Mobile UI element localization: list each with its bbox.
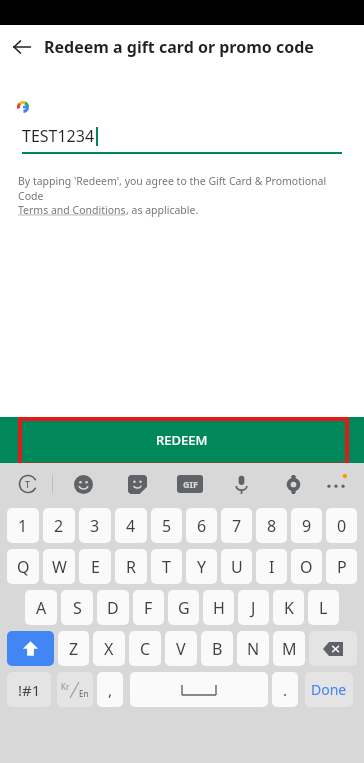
button[interactable]: N [237,631,269,666]
button[interactable]: 7 [221,508,252,543]
button[interactable]: Done [305,672,353,707]
staticText: O [300,556,313,578]
button[interactable]: GIF [177,475,203,493]
button[interactable]: W [43,549,75,584]
button[interactable]: C [129,631,161,666]
button[interactable]: U [221,549,252,584]
staticText: T [162,556,171,578]
staticText: 8 [267,515,277,537]
button[interactable]: 2 [43,508,75,543]
staticText: S [73,597,82,619]
button[interactable]: X [93,631,125,666]
button[interactable]: Back [0,25,44,69]
staticText: C [140,638,151,660]
button[interactable]: More options [322,470,350,498]
staticText: Q [17,556,30,578]
button[interactable]: Z [58,631,89,666]
button[interactable]: E [79,549,111,584]
button[interactable]: B [201,631,233,666]
button[interactable]: Space [130,672,268,707]
staticText: GIF [183,478,198,490]
staticText: 7 [232,515,242,537]
button[interactable]: T [151,549,182,584]
button[interactable]: . [272,672,298,707]
staticText: M [282,638,297,660]
staticText: 0 [337,515,347,537]
button[interactable]: Shift [7,631,54,666]
staticText: Redeem a gift card or promo code [44,36,314,58]
button[interactable]: J [238,590,269,625]
button[interactable]: H [203,590,234,625]
button[interactable]: L [308,590,339,625]
staticText: 9 [302,515,312,537]
staticText: 6 [197,515,207,537]
staticText: . [283,680,288,700]
staticText: Kr [61,681,70,692]
staticText: 5 [162,515,172,537]
staticText: R [126,556,136,578]
button[interactable]: V [165,631,197,666]
button[interactable]: !#1 [7,672,51,707]
staticText: , as applicable. [126,203,199,217]
button[interactable]: Stickers [123,470,151,498]
button[interactable]: Y [186,549,217,584]
button[interactable]: 0 [326,508,357,543]
staticText: F [144,597,153,619]
staticText: 1 [18,515,28,537]
staticText: G [178,597,190,619]
button[interactable]: 8 [256,508,287,543]
button[interactable]: F [133,590,164,625]
staticText: , [108,680,113,700]
staticText: W [52,556,67,578]
staticText: L [319,597,328,619]
button[interactable]: K [273,590,304,625]
button[interactable]: Translate [14,470,42,498]
button[interactable]: Q [7,549,39,584]
staticText: K [284,597,294,619]
staticText: X [104,638,114,660]
staticText: J [251,597,256,619]
button[interactable]: O [291,549,322,584]
staticText: !#1 [18,680,41,700]
staticText: P [337,556,347,578]
button[interactable]: , [97,672,123,707]
button[interactable]: Terms and Conditions [18,203,126,217]
staticText: N [247,638,260,660]
staticText: 2 [54,515,64,537]
staticText: REDEEM [156,431,208,449]
staticText: TEST1234 [22,125,95,147]
button[interactable]: TEST1234 [22,125,342,154]
button[interactable]: 5 [151,508,182,543]
button[interactable]: A [25,590,57,625]
button[interactable]: 9 [291,508,322,543]
staticText: U [231,556,243,578]
button[interactable]: M [273,631,305,666]
staticText: Done [311,680,347,699]
button[interactable]: Backspace [309,631,357,666]
staticText: T [25,478,31,490]
button[interactable]: I [256,549,287,584]
staticText: B [212,638,223,660]
button[interactable]: R [115,549,147,584]
button[interactable]: 1 [7,508,39,543]
staticText: 4 [126,515,136,537]
button[interactable]: Voice input [227,470,255,498]
staticText: Y [197,556,207,578]
button[interactable]: Change language [57,672,93,707]
staticText: Z [69,638,79,660]
button[interactable]: Emoji [69,470,97,498]
button[interactable]: P [326,549,357,584]
button[interactable]: 4 [115,508,147,543]
button[interactable]: Settings [279,470,307,498]
button[interactable]: G [168,590,199,625]
staticText: V [176,638,186,660]
staticText: En [79,688,89,699]
button[interactable]: 6 [186,508,217,543]
staticText: E [91,556,100,578]
button[interactable]: D [97,590,129,625]
button[interactable]: S [61,590,93,625]
button[interactable]: REDEEM [0,417,364,463]
staticText: By tapping 'Redeem', you agree to the Gi… [18,174,346,203]
button[interactable]: 3 [79,508,111,543]
staticText: A [36,597,47,619]
